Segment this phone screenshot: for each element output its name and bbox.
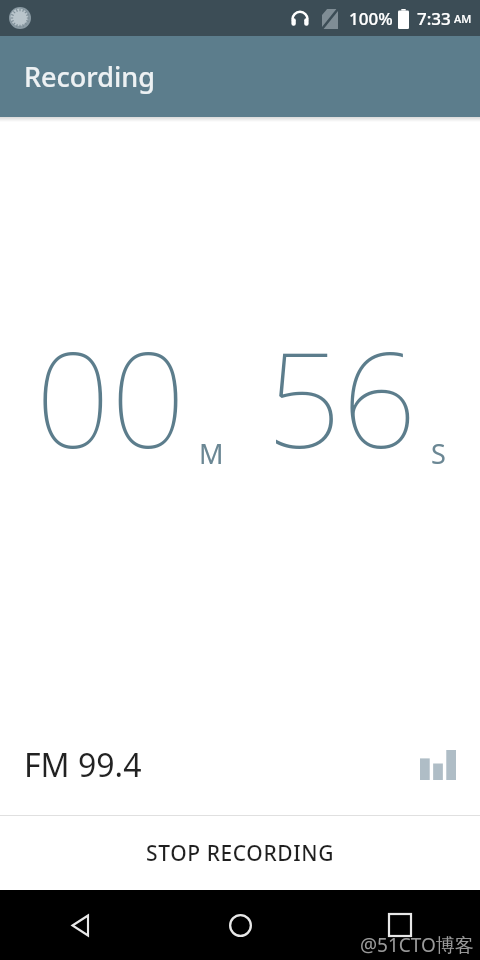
button[interactable]: Recent apps	[320, 890, 480, 960]
staticText: @51CTO博客	[360, 932, 474, 958]
staticText: AM	[454, 11, 472, 26]
staticText: 56	[266, 307, 417, 487]
staticText: 7:33	[417, 7, 451, 30]
staticText: Recording	[24, 58, 155, 95]
staticText: STOP RECORDING	[146, 839, 335, 868]
button[interactable]: Back	[0, 890, 160, 960]
staticText: S	[431, 435, 446, 472]
button[interactable]: FM 99.4	[0, 715, 480, 815]
button[interactable]: Home	[160, 890, 320, 960]
other: Signal strength	[420, 750, 456, 780]
staticText: 00	[35, 307, 186, 487]
button[interactable]: STOP RECORDING	[0, 816, 480, 890]
staticText: M	[199, 435, 224, 472]
staticText: 100%	[349, 7, 393, 30]
staticText: FM 99.4	[24, 743, 142, 787]
